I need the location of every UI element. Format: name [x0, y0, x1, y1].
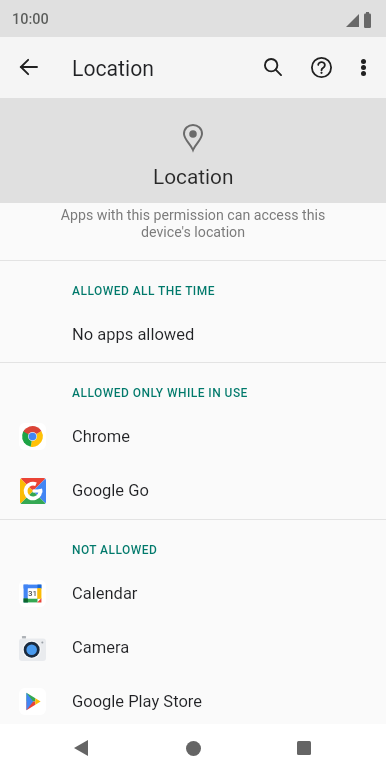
button[interactable]: More options: [339, 43, 386, 91]
button[interactable]: No apps allowed: [0, 307, 386, 362]
staticText: Google Go: [72, 481, 149, 500]
staticText: No apps allowed: [72, 325, 195, 344]
staticText: Google Play Store: [72, 692, 202, 711]
staticText: 31: [28, 589, 38, 598]
staticText: Apps with this permission can access thi…: [0, 207, 386, 240]
staticText: Chrome: [72, 427, 130, 446]
staticText: Camera: [72, 638, 130, 657]
button[interactable]: Camera: [0, 620, 386, 674]
button[interactable]: Google Play Store: [0, 674, 386, 728]
staticText: ALLOWED ONLY WHILE IN USE: [72, 386, 248, 400]
button[interactable]: 31: [0, 566, 386, 620]
staticText: ALLOWED ALL THE TIME: [72, 284, 215, 298]
button[interactable]: Navigate up: [4, 43, 52, 91]
button[interactable]: Search: [249, 43, 297, 91]
button[interactable]: Back: [57, 724, 105, 772]
staticText: 10:00: [12, 11, 49, 28]
button[interactable]: Google Go: [0, 463, 386, 517]
button[interactable]: Home: [169, 724, 217, 772]
button[interactable]: Recent apps: [280, 724, 328, 772]
button[interactable]: Help: [297, 43, 345, 91]
staticText: Location: [72, 56, 154, 81]
button[interactable]: Chrome: [0, 409, 386, 463]
staticText: Location: [153, 165, 234, 189]
staticText: NOT ALLOWED: [72, 543, 158, 557]
staticText: Calendar: [72, 584, 138, 603]
